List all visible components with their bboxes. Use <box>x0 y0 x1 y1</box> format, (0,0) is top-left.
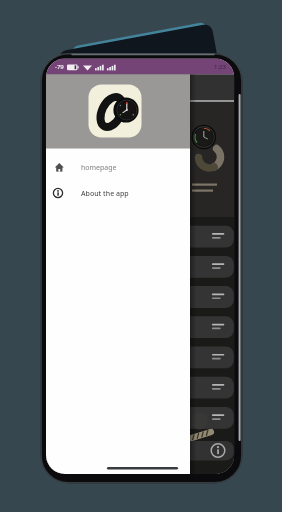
staticText: 1:23 <box>214 63 226 71</box>
button[interactable] <box>190 407 234 429</box>
staticText: homepage <box>81 163 117 173</box>
button[interactable] <box>190 226 234 248</box>
button[interactable] <box>190 286 234 308</box>
staticText: About the app <box>81 189 129 199</box>
button[interactable] <box>190 441 234 461</box>
button[interactable] <box>190 256 234 278</box>
button[interactable] <box>190 316 234 338</box>
button[interactable]: homepage <box>46 156 190 179</box>
button[interactable] <box>190 347 234 369</box>
staticText: -79 <box>55 63 64 71</box>
button[interactable] <box>190 377 234 399</box>
button[interactable]: About the app <box>46 182 190 205</box>
